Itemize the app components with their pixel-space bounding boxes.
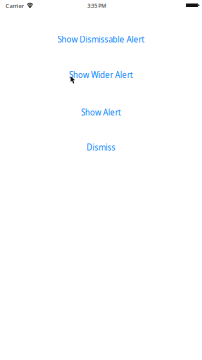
- staticText: Show Dismissable Alert: [57, 34, 144, 45]
- button[interactable]: Show Dismissable Alert: [0, 31, 202, 48]
- button[interactable]: Show Wider Alert: [0, 66, 202, 83]
- staticText: Carrier: [5, 2, 23, 10]
- button[interactable]: Show Alert: [0, 104, 202, 121]
- staticText: Dismiss: [86, 142, 115, 153]
- staticText: Show Alert: [81, 107, 121, 118]
- staticText: Show Wider Alert: [69, 70, 133, 80]
- staticText: 3:35 PM: [87, 2, 106, 9]
- button[interactable]: Dismiss: [0, 139, 202, 156]
